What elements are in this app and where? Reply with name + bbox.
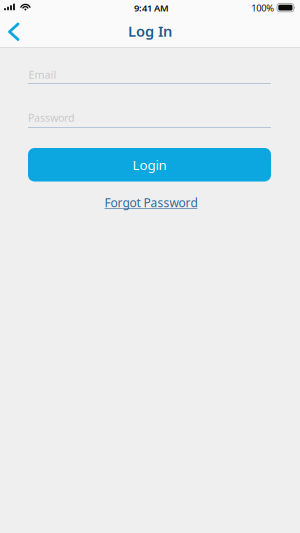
staticText: Password: [28, 110, 75, 125]
staticText: Login: [132, 156, 166, 174]
staticText: 100%: [251, 2, 274, 14]
staticText: Forgot Password: [104, 194, 197, 210]
button[interactable]: Back: [3, 18, 24, 45]
staticText: Email: [28, 67, 56, 82]
button[interactable]: Forgot Password: [104, 194, 197, 210]
staticText: 9:41 AM: [134, 2, 169, 14]
staticText: Log In: [128, 21, 172, 41]
button[interactable]: Login: [28, 148, 271, 181]
